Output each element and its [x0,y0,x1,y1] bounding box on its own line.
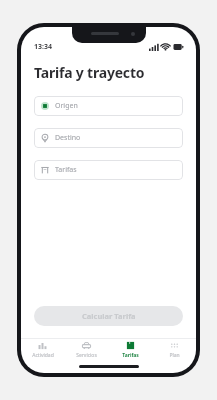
staticText: Calcular Tarifa [82,311,136,321]
button[interactable]: Plan [152,339,196,361]
staticText: Servicios [76,352,97,359]
staticText: Tarifas [122,352,139,359]
staticText: Plan [169,352,180,359]
button[interactable]: Actividad [21,339,64,361]
button[interactable]: Tarifas [34,160,183,180]
staticText: 13:34 [34,42,52,52]
staticText: Destino [55,133,81,143]
staticText: Origen [55,101,78,111]
button[interactable]: Origen [34,96,183,116]
button[interactable]: Tarifas [108,339,152,361]
button[interactable]: Destino [34,128,183,148]
staticText: Actividad [32,352,54,359]
staticText: Tarifa y trayecto [34,63,145,82]
staticText: Tarifas [55,165,77,175]
button[interactable]: Calcular Tarifa [34,306,183,326]
button[interactable]: Servicios [64,339,108,361]
